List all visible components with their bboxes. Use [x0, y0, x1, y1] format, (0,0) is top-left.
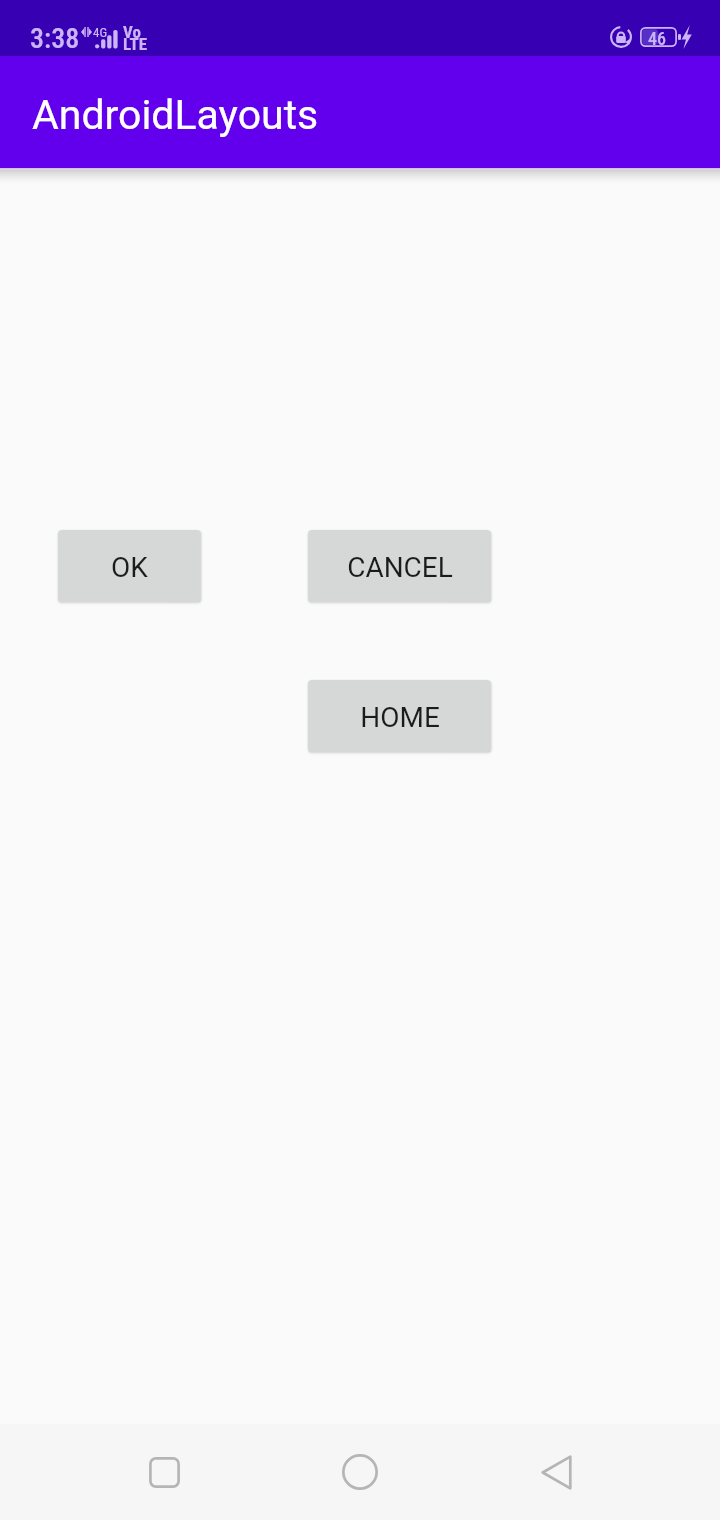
staticText: 4G — [93, 25, 108, 40]
staticText: HOME — [360, 701, 440, 734]
staticText: CANCEL — [347, 551, 453, 584]
staticText: Vo — [123, 22, 141, 42]
button[interactable]: OK — [58, 530, 201, 602]
button[interactable]: HOME — [308, 680, 491, 752]
staticText: AndroidLayouts — [32, 91, 319, 139]
button[interactable]: Recent apps — [104, 1424, 224, 1520]
staticText: 3:38 — [30, 22, 80, 55]
staticText: LTE — [123, 34, 147, 54]
button[interactable]: Back — [496, 1424, 616, 1520]
staticText: 46 — [648, 28, 666, 49]
button[interactable]: CANCEL — [308, 530, 491, 602]
staticText: OK — [111, 551, 148, 584]
other: Rotation locked — [610, 26, 632, 48]
button[interactable]: Home — [300, 1424, 420, 1520]
